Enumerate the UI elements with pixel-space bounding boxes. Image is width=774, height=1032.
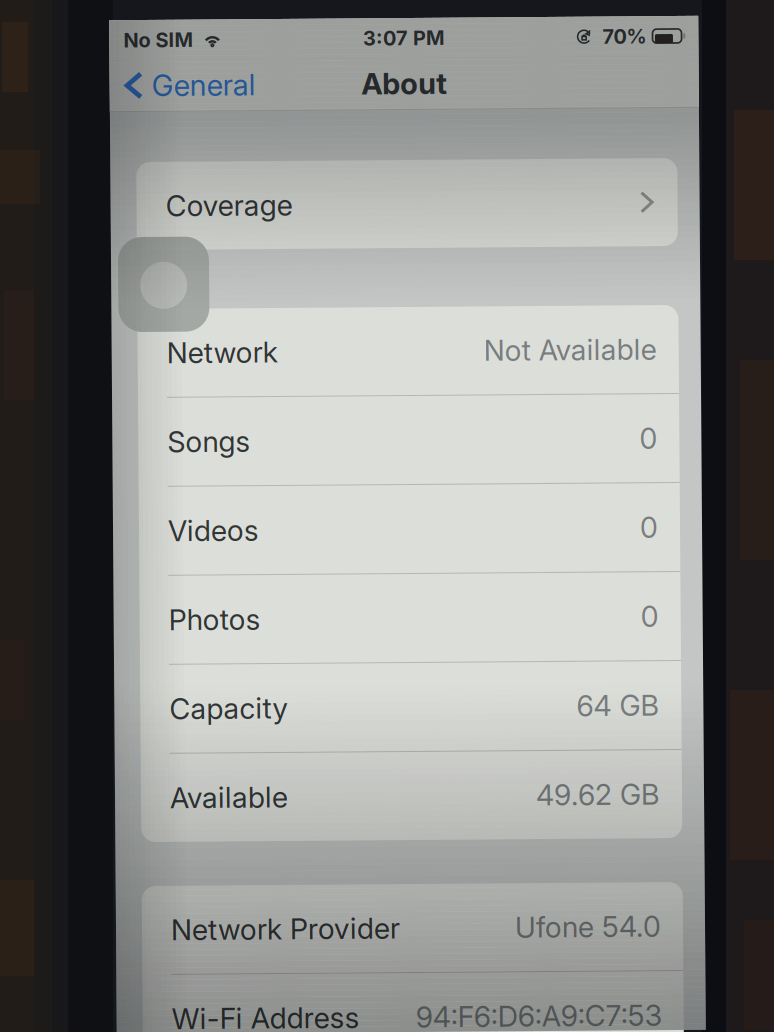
button[interactable]: Wi-Fi Address — [139, 973, 680, 1032]
button[interactable]: General — [113, 58, 259, 109]
staticText: 94:F6:D6:A9:C7:53 — [412, 1000, 658, 1032]
staticText: 3:07 PM — [366, 26, 448, 50]
staticText: About — [364, 66, 450, 101]
staticText: Ufone 54.0 — [512, 911, 658, 945]
staticText: Available — [168, 779, 286, 813]
staticText: 0 — [640, 601, 658, 635]
staticText: Videos — [168, 512, 259, 546]
staticText: Coverage — [168, 187, 295, 221]
button[interactable]: Songs — [139, 396, 680, 484]
staticText: 64 GB — [575, 690, 658, 724]
button[interactable]: Capacity — [139, 663, 680, 751]
button[interactable]: AssistiveTouch — [120, 235, 211, 330]
button[interactable]: Videos — [139, 485, 680, 573]
button[interactable]: Coverage — [139, 160, 680, 248]
staticText: Not Available — [485, 334, 658, 368]
staticText: Network — [168, 334, 279, 368]
staticText: General — [155, 66, 259, 101]
staticText: Network Provider — [168, 911, 397, 945]
button[interactable]: Available — [139, 752, 680, 840]
staticText: Wi-Fi Address — [168, 1000, 356, 1032]
staticText: 70% — [606, 26, 650, 50]
staticText: Photos — [168, 601, 260, 635]
staticText: 0 — [640, 423, 658, 457]
button[interactable]: Network Provider — [139, 884, 680, 972]
button[interactable]: Network — [139, 307, 680, 395]
button[interactable]: Photos — [139, 574, 680, 662]
staticText: Capacity — [168, 690, 287, 724]
staticText: Songs — [168, 423, 251, 457]
staticText: 49.62 GB — [534, 779, 658, 813]
staticText: 0 — [640, 512, 658, 546]
staticText: No SIM — [127, 26, 197, 50]
